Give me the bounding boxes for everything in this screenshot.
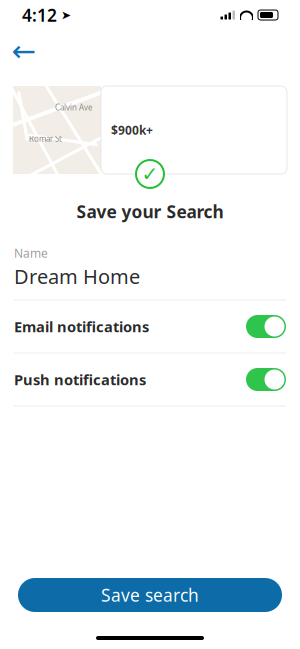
staticText: ✓ [141, 163, 158, 185]
button[interactable]: Push notifications [0, 353, 300, 405]
staticText: 4:12 [22, 3, 57, 26]
button[interactable]: Back [4, 34, 44, 68]
staticText: Email notifications [14, 317, 149, 336]
staticText: Calvin Ave [55, 102, 93, 113]
button[interactable]: Email notifications [0, 300, 300, 352]
staticText: Dream Home [14, 263, 140, 290]
staticText: Save search [101, 583, 199, 606]
staticText: Save your Search [76, 200, 223, 223]
staticText: Name [14, 245, 48, 261]
staticText: ➤ [61, 8, 71, 22]
staticText: $900k+ [111, 122, 153, 138]
staticText: Romar St [29, 133, 62, 144]
staticText: Push notifications [14, 370, 146, 389]
button[interactable]: Save search [18, 578, 282, 612]
staticText: ← [11, 34, 36, 68]
